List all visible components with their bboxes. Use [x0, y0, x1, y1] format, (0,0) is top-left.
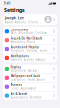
- staticText: Wi-Fi, Bluetooth, Cellular: [10, 31, 46, 35]
- staticText: Wallpaper and Look: [10, 74, 39, 78]
- staticText: Settings: [4, 6, 25, 14]
- staticText: Color, Appearance: [10, 87, 36, 90]
- staticText: Schedules, Filters: [10, 40, 34, 44]
- staticText: Siri & Search: [10, 92, 27, 96]
- button[interactable]: Focus & Do Not Disturb: [3, 36, 57, 45]
- button[interactable]: Sounds and Haptics: [3, 45, 57, 54]
- staticText: Sounds and Haptics: [10, 45, 38, 49]
- staticText: Brightness, Text Size: [10, 69, 37, 72]
- staticText: Suggestions, Shortcuts: [10, 96, 41, 99]
- staticText: Display: [10, 65, 20, 69]
- button[interactable]: Wallpaper and Look: [3, 74, 57, 82]
- staticText: Connectivity: [10, 28, 27, 31]
- button[interactable]: Display: [3, 65, 57, 74]
- button[interactable]: Connectivity: [3, 27, 57, 36]
- staticText: Themes: [10, 83, 21, 87]
- staticText: 9:41: [4, 2, 11, 5]
- staticText: Notifications: [10, 54, 28, 58]
- button[interactable]: Themes: [3, 82, 57, 91]
- staticText: Apple Account, iCloud, and more: [5, 20, 41, 24]
- staticText: Banners, Sounds, Badges: [10, 58, 45, 61]
- button[interactable]: Joseph Lee: [3, 14, 57, 25]
- button[interactable]: Notifications: [3, 54, 57, 62]
- staticText: Ringtone, Volume, Touch: [10, 49, 47, 52]
- staticText: Focus & Do Not Disturb: [10, 37, 42, 40]
- staticText: Lock Screen, Home Screen: [10, 78, 45, 81]
- button[interactable]: Siri & Search: [3, 91, 57, 100]
- staticText: Joseph Lee: [5, 15, 24, 20]
